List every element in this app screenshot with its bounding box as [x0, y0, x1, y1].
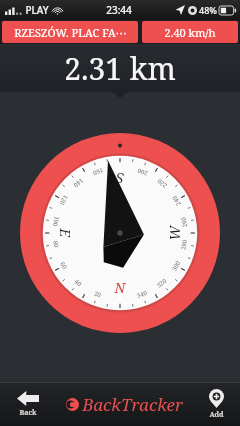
staticText: 2.40 km/h [164, 25, 216, 40]
button[interactable]: 2.40 km/h [142, 21, 238, 43]
staticText: Back [19, 408, 37, 418]
staticText: RZESZÓW. PLAC FA⋯ [14, 25, 127, 40]
button[interactable]: Add [192, 382, 240, 426]
staticText: 2.31 km [64, 48, 176, 89]
button[interactable]: Back [0, 382, 56, 426]
button[interactable]: BackTracker [56, 382, 192, 426]
staticText: Add [209, 410, 224, 420]
staticText: BackTracker [82, 393, 183, 416]
staticText: PLAY [25, 3, 49, 17]
button[interactable]: RZESZÓW. PLAC FA⋯ [2, 21, 138, 43]
staticText: 48% [199, 4, 217, 16]
staticText: 23:44 [106, 3, 132, 17]
